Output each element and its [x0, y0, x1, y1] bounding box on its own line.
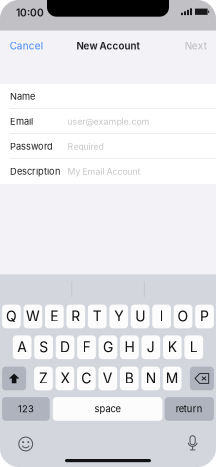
staticText: S [39, 339, 48, 356]
staticText: user@example.com [67, 116, 149, 127]
staticText: Name [10, 91, 35, 102]
button[interactable]: Dictation [188, 435, 198, 451]
staticText: V [103, 370, 113, 387]
button[interactable]: G [99, 335, 117, 359]
staticText: return [176, 403, 203, 415]
button[interactable]: K [163, 335, 182, 359]
button[interactable]: U [131, 305, 149, 328]
staticText: M [166, 370, 179, 387]
button[interactable]: space [53, 397, 162, 421]
staticText: Description [10, 166, 60, 177]
button[interactable]: F [77, 335, 96, 359]
button[interactable]: Delete [190, 367, 214, 390]
staticText: Email [10, 116, 33, 127]
button[interactable]: V [98, 367, 117, 390]
button[interactable]: Emoji keyboard [18, 436, 33, 451]
staticText: A [17, 339, 27, 356]
button[interactable]: N [141, 367, 160, 390]
button[interactable]: Description [0, 159, 216, 184]
button[interactable]: return [165, 397, 214, 421]
staticText: Required [67, 141, 103, 152]
staticText: Z [39, 370, 48, 387]
staticText: C [81, 370, 91, 387]
button[interactable]: L [184, 335, 203, 359]
button[interactable]: W [24, 305, 42, 328]
button[interactable]: E [45, 305, 64, 328]
staticText: X [60, 370, 69, 387]
staticText: B [125, 370, 134, 387]
staticText: F [82, 339, 90, 356]
staticText: J [147, 339, 155, 356]
button[interactable]: Password [0, 134, 216, 159]
button[interactable]: R [66, 305, 85, 328]
button[interactable]: Name [0, 84, 216, 109]
button[interactable]: Shift [2, 367, 26, 390]
staticText: Y [114, 308, 123, 325]
button[interactable]: 123 [2, 397, 50, 421]
staticText: R [71, 308, 80, 325]
staticText: Cancel [10, 40, 43, 52]
button[interactable]: Z [34, 367, 53, 390]
staticText: G [103, 339, 113, 356]
staticText: Next [185, 40, 207, 52]
staticText: My Email Account [67, 166, 140, 177]
button[interactable]: Cancel [0, 34, 49, 58]
staticText: New Account [76, 40, 139, 52]
staticText: H [124, 339, 134, 356]
staticText: Password [10, 141, 53, 152]
button[interactable]: T [88, 305, 107, 328]
button[interactable]: O [174, 305, 192, 328]
button[interactable]: H [120, 335, 139, 359]
staticText: U [135, 308, 145, 325]
staticText: I [160, 308, 164, 325]
button[interactable]: Email [0, 109, 216, 134]
staticText: N [146, 370, 156, 387]
button[interactable]: M [163, 367, 181, 390]
button[interactable]: A [13, 335, 31, 359]
staticText: P [200, 308, 209, 325]
button[interactable]: X [55, 367, 74, 390]
staticText: Q [6, 308, 17, 325]
staticText: K [168, 339, 177, 356]
button[interactable]: D [56, 335, 74, 359]
button[interactable]: Y [109, 305, 128, 328]
staticText: 123 [18, 403, 34, 415]
button[interactable]: I [152, 305, 171, 328]
button[interactable]: S [34, 335, 53, 359]
button[interactable]: B [120, 367, 139, 390]
staticText: 10:00 [16, 7, 44, 19]
staticText: T [93, 308, 102, 325]
button[interactable]: C [77, 367, 96, 390]
button[interactable]: Q [2, 305, 21, 328]
staticText: E [50, 308, 58, 325]
staticText: W [26, 308, 40, 325]
staticText: D [60, 339, 70, 356]
staticText: L [190, 339, 198, 356]
button[interactable]: J [141, 335, 160, 359]
button[interactable]: P [195, 305, 214, 328]
staticText: space [95, 403, 121, 415]
staticText: O [177, 308, 188, 325]
button[interactable]: Next [179, 34, 216, 58]
